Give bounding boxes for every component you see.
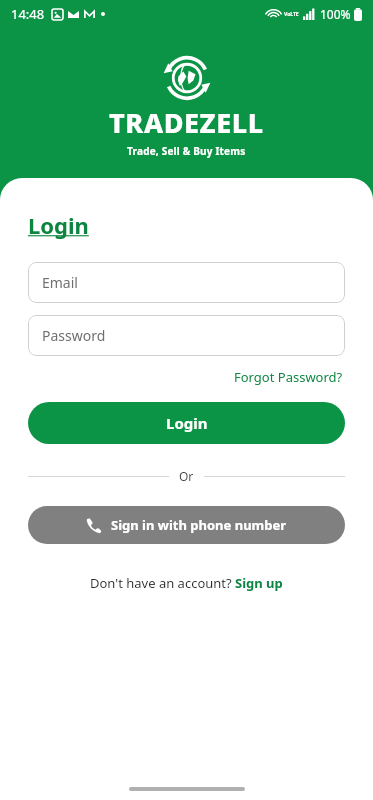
button[interactable]: Login — [28, 402, 345, 444]
staticText: Sign in with phone number — [111, 516, 287, 534]
staticText: 100% — [320, 6, 351, 22]
staticText: 14:48 — [11, 5, 45, 23]
staticText: VoLTE — [284, 11, 299, 18]
button[interactable]: Forgot Password? — [232, 366, 345, 388]
button[interactable]: Phone — [28, 506, 345, 544]
staticText: Password — [42, 326, 106, 345]
staticText: TRADEZELL — [109, 104, 264, 141]
staticText: Email — [42, 273, 78, 292]
staticText: Login — [166, 413, 208, 433]
button[interactable]: Email — [28, 262, 345, 303]
staticText: Forgot Password? — [234, 368, 343, 386]
staticText: Login — [28, 210, 89, 240]
staticText: Or — [179, 468, 194, 484]
button[interactable]: Login — [28, 210, 89, 240]
staticText: Don't have an account? Sign up — [90, 574, 283, 592]
staticText: Trade, Sell & Buy Items — [127, 144, 246, 158]
other: Phone — [86, 518, 101, 533]
button[interactable]: Don't have an account? Sign up — [88, 572, 285, 594]
button[interactable]: Password — [28, 315, 345, 356]
